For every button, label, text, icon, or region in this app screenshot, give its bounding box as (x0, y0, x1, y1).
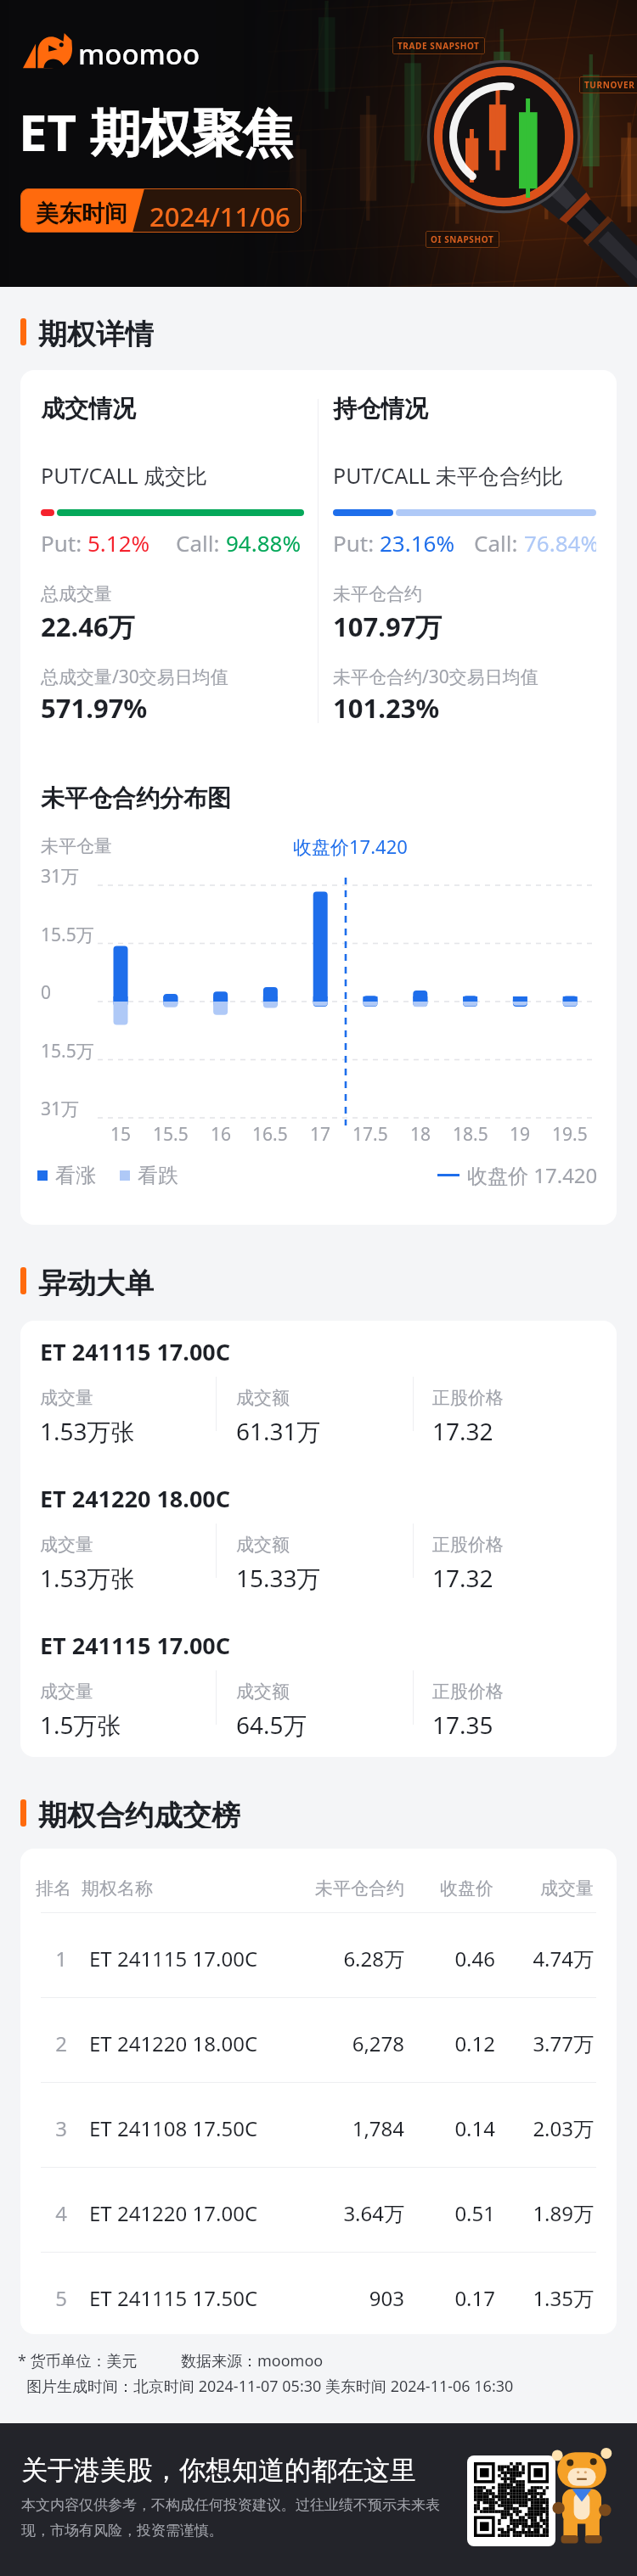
staticText: 收盘价 17.420 (467, 1161, 598, 1189)
staticText: 排名 (36, 1877, 71, 1900)
staticText: 0 (41, 980, 52, 1005)
staticText: 15.5万 (41, 1039, 94, 1064)
staticText: 19 (510, 1122, 531, 1147)
staticText: 成交情况 (41, 394, 136, 424)
staticText: 16 (211, 1122, 232, 1147)
staticText: 19.5 (552, 1122, 588, 1147)
button[interactable]: 2 (20, 1997, 617, 2082)
staticText: 3.64万 (268, 2199, 404, 2227)
staticText: 17.32 (432, 1562, 493, 1594)
staticText: ET 241115 17.00C (89, 1945, 258, 1973)
staticText: 未平仓量 (41, 835, 112, 857)
staticText: 1 (44, 1945, 78, 1973)
staticText: Put: (41, 528, 87, 558)
button[interactable]: 4 (20, 2167, 617, 2252)
staticText: ET 241220 17.00C (89, 2199, 258, 2227)
staticText: Call: (176, 528, 226, 558)
staticText: 4.74万 (492, 1945, 594, 1973)
staticText: 571.97% (41, 690, 148, 726)
staticText: 持仓情况 (333, 394, 428, 424)
button[interactable]: 收盘价 17.420 (437, 1161, 598, 1189)
staticText: 5 (44, 2284, 78, 2312)
staticText: 异动大单 (38, 1266, 154, 1296)
staticText: 未平仓合约分布图 (41, 783, 231, 813)
staticText: 5.12% (87, 528, 150, 558)
staticText: 收盘价 (392, 1877, 493, 1900)
staticText: ET 241220 18.00C (89, 2029, 258, 2057)
staticText: 6,278 (268, 2029, 404, 2057)
staticText: 15.5万 (41, 923, 94, 947)
staticText: 6.28万 (268, 1945, 404, 1973)
staticText: 1.35万 (492, 2284, 594, 2312)
staticText: 期权合约成交榜 (38, 1798, 240, 1828)
button[interactable]: ET 241115 17.00C (20, 1626, 617, 1757)
staticText: 未平仓合约/30交易日均值 (333, 665, 538, 689)
button[interactable]: 期权合约成交榜 (20, 1798, 240, 1828)
staticText: 0.46 (392, 1945, 495, 1973)
staticText: 期权名称 (82, 1877, 153, 1900)
staticText: 关于港美股，你想知道的都在这里 (21, 2454, 416, 2487)
staticText: ET 期权聚焦 (19, 97, 294, 166)
staticText: 成交量 (40, 1387, 93, 1409)
button[interactable]: ET 241220 18.00C (20, 1479, 617, 1615)
staticText: 1.53万张 (40, 1415, 135, 1447)
staticText: 16.5 (252, 1122, 288, 1147)
staticText: ET 241115 17.00C (40, 1630, 231, 1661)
staticText: 正股价格 (432, 1387, 504, 1409)
button[interactable]: ET 241115 17.00C (20, 1333, 617, 1468)
staticText: 成交量 (40, 1534, 93, 1556)
staticText: 1.5万张 (40, 1709, 121, 1741)
staticText: ET 241115 17.50C (89, 2284, 258, 2312)
staticText: 4 (44, 2199, 78, 2227)
staticText: 成交额 (236, 1387, 290, 1409)
staticText: ET 241115 17.00C (40, 1336, 231, 1367)
button[interactable]: 5 (20, 2252, 617, 2334)
button[interactable]: 异动大单 (20, 1266, 154, 1296)
staticText: 0.12 (392, 2029, 495, 2057)
staticText: 美东时间 (36, 199, 127, 228)
staticText: 1.53万张 (40, 1562, 135, 1594)
other: QR code (467, 2455, 555, 2546)
staticText: 61.31万 (236, 1415, 321, 1447)
staticText: 0.51 (392, 2199, 495, 2227)
button[interactable]: 美东时间 (20, 188, 302, 233)
staticText: 23.16% (380, 528, 455, 558)
staticText: 18 (410, 1122, 431, 1147)
staticText: 3.77万 (492, 2029, 594, 2057)
staticText: PUT/CALL 未平仓合约比 (333, 461, 564, 490)
staticText: 22.46万 (41, 609, 135, 644)
staticText: 未平仓合约 (268, 1877, 404, 1900)
staticText: 1,784 (268, 2114, 404, 2142)
staticText: 总成交量 (41, 583, 112, 605)
staticText: 17 (310, 1122, 331, 1147)
button[interactable]: 期权详情 (20, 317, 154, 347)
staticText: 2.03万 (492, 2114, 594, 2142)
staticText: OI SNAPSHOT (431, 233, 494, 245)
staticText: 903 (268, 2284, 404, 2312)
staticText: 数据来源：moomoo (181, 2350, 324, 2371)
button[interactable]: 3 (20, 2082, 617, 2167)
button[interactable]: 看跌 (120, 1163, 178, 1188)
staticText: 17.5 (352, 1122, 388, 1147)
staticText: ET 241108 17.50C (89, 2114, 258, 2142)
staticText: 17.35 (432, 1709, 493, 1741)
staticText: * 货币单位：美元 (18, 2350, 138, 2371)
staticText: 0.14 (392, 2114, 495, 2142)
staticText: 64.5万 (236, 1709, 307, 1741)
staticText: 成交量 (40, 1681, 93, 1703)
staticText: 31万 (41, 864, 80, 889)
button[interactable]: 1 (20, 1912, 617, 1997)
staticText: TRADE SNAPSHOT (397, 40, 480, 52)
staticText: ET 241220 18.00C (40, 1483, 231, 1514)
staticText: 94.88% (226, 528, 302, 558)
staticText: 看涨 (55, 1163, 96, 1188)
button[interactable]: 看涨 (37, 1163, 96, 1188)
staticText: 2 (44, 2029, 78, 2057)
staticText: 现，市场有风险，投资需谨慎。 (21, 2522, 223, 2540)
staticText: 未平仓合约 (333, 583, 422, 605)
staticText: 15 (110, 1122, 132, 1147)
staticText: 31万 (41, 1097, 80, 1121)
staticText: 成交量 (492, 1877, 594, 1900)
staticText: moomoo (78, 35, 200, 73)
staticText: 成交额 (236, 1681, 290, 1703)
